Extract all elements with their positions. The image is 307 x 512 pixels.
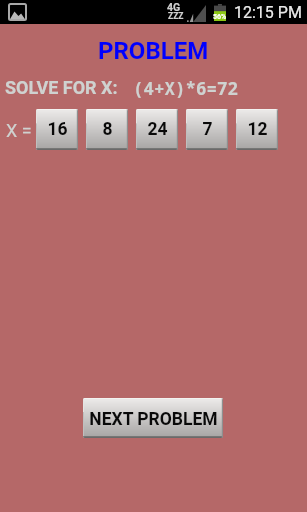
button[interactable]: 12 (236, 109, 278, 150)
staticText: 12 (247, 119, 268, 140)
staticText: (4+X)*6=72 (133, 76, 238, 98)
staticText: ZZZ (168, 11, 184, 21)
button[interactable]: 16 (36, 109, 78, 150)
staticText: SOLVE FOR X: (5, 77, 118, 98)
button[interactable]: 24 (136, 109, 178, 150)
button[interactable]: NEXT PROBLEM (83, 398, 223, 438)
staticText: 24 (147, 119, 168, 140)
button[interactable]: 8 (86, 109, 128, 150)
other: Gallery notification (8, 3, 27, 21)
staticText: 56% (213, 13, 227, 21)
staticText: NEXT PROBLEM (89, 409, 218, 430)
button[interactable]: 7 (186, 109, 228, 150)
staticText: PROBLEM (98, 37, 209, 65)
staticText: X = (6, 120, 32, 141)
staticText: 7 (202, 119, 213, 140)
staticText: 4G (167, 1, 181, 13)
staticText: 16 (47, 119, 68, 140)
staticText: 8 (102, 119, 113, 140)
staticText: 12:15 PM (234, 3, 302, 22)
